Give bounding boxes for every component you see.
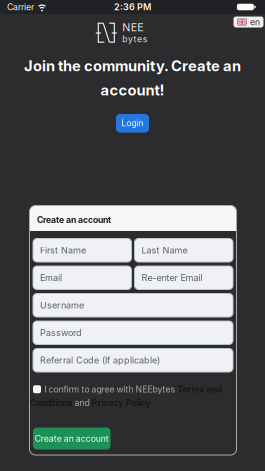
- staticText: Join the community. Create an: [24, 57, 241, 75]
- staticText: Carrier: [7, 2, 34, 12]
- button[interactable]: I confirm to agree with NEEbytes Terms a…: [33, 385, 41, 393]
- button[interactable]: Privacy Policy: [91, 397, 150, 408]
- textField[interactable]: Re-enter Email: [134, 266, 233, 289]
- staticText: Create an account: [35, 433, 109, 444]
- staticText: Login: [121, 118, 143, 128]
- staticText: I confirm to agree with NEEbytes: [44, 384, 177, 394]
- staticText: Conditions: [29, 397, 72, 408]
- staticText: Referral Code (If applicable): [40, 355, 160, 366]
- textField[interactable]: Referral Code (If applicable): [33, 348, 233, 372]
- textField[interactable]: Password: [33, 321, 233, 344]
- staticText: Create an account: [37, 214, 111, 225]
- button[interactable]: Terms and Conditions: [29, 397, 72, 408]
- staticText: Password: [40, 327, 82, 338]
- staticText: 2:36 PM: [114, 1, 151, 12]
- staticText: account!: [100, 81, 164, 99]
- textField[interactable]: Username: [33, 293, 233, 317]
- staticText: Re-enter Email: [141, 272, 202, 283]
- staticText: Email: [40, 272, 62, 283]
- staticText: bytes: [122, 34, 148, 44]
- staticText: en: [250, 17, 260, 27]
- staticText: Last Name: [141, 245, 187, 256]
- staticText: Username: [40, 300, 84, 311]
- textField[interactable]: Last Name: [134, 238, 233, 262]
- textField[interactable]: Email: [33, 266, 131, 289]
- button[interactable]: Login: [116, 114, 149, 132]
- staticText: and: [72, 397, 91, 408]
- staticText: NEE: [122, 21, 143, 34]
- button[interactable]: Language: English: [233, 16, 263, 27]
- textField[interactable]: First Name: [33, 238, 131, 262]
- staticText: Terms and: [177, 384, 221, 394]
- staticText: Privacy Policy: [91, 397, 150, 408]
- button[interactable]: Terms and: [177, 384, 221, 394]
- staticText: First Name: [40, 245, 86, 256]
- button[interactable]: Create an account: [33, 427, 110, 449]
